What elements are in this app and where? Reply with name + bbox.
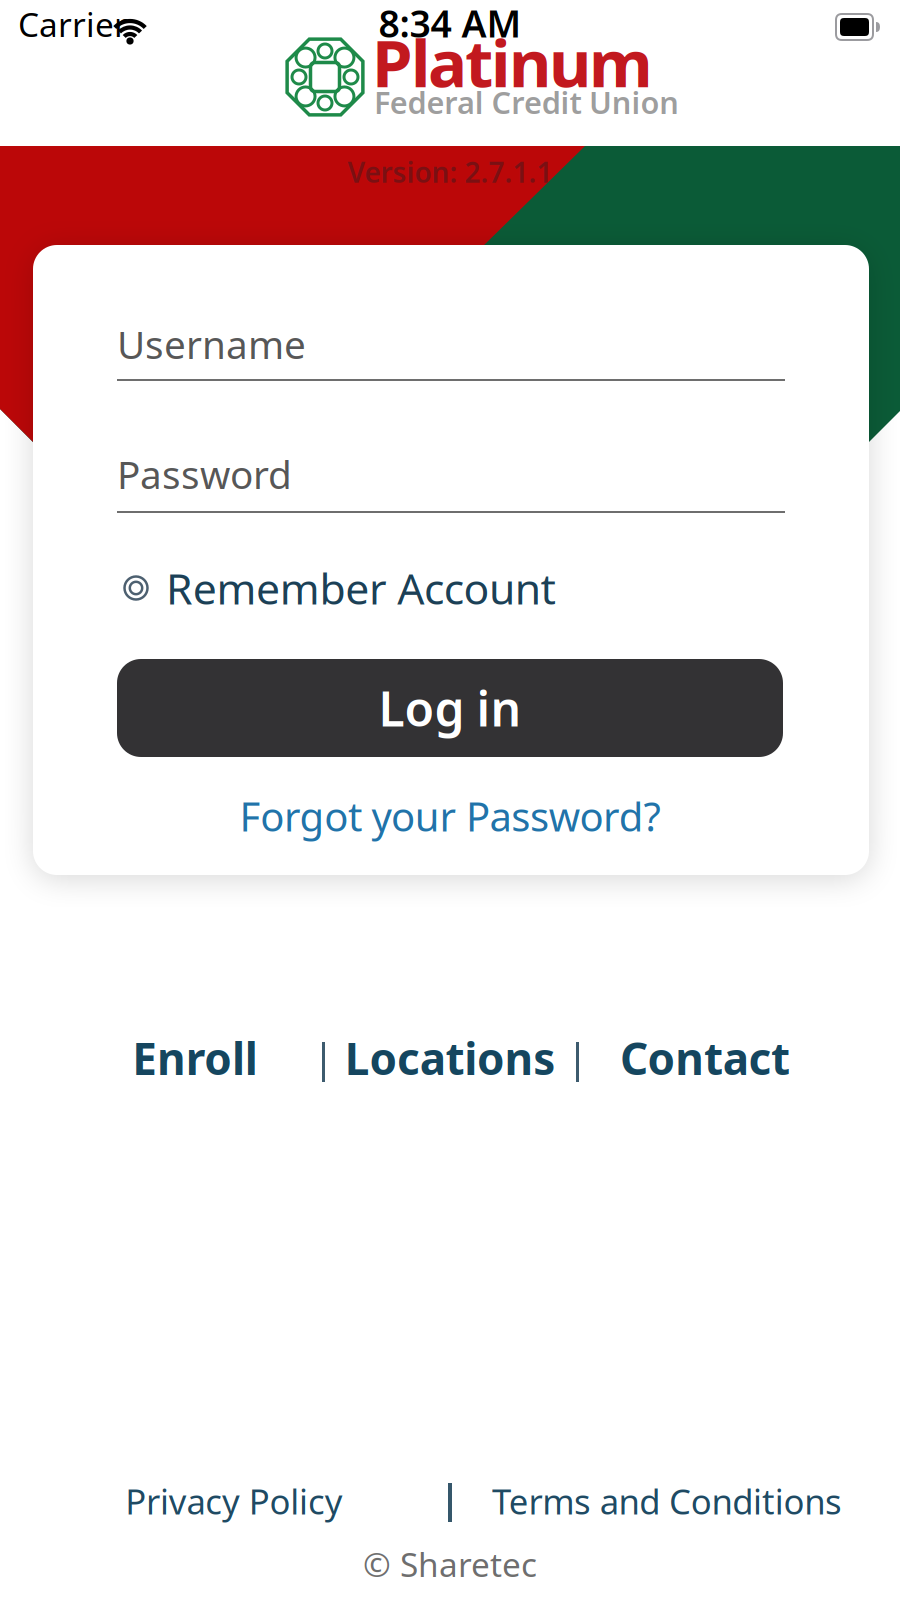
staticText: Locations <box>345 1029 555 1087</box>
staticText: Federal Credit Union <box>374 82 679 122</box>
button[interactable]: Enroll <box>132 1029 258 1087</box>
staticText: Log in <box>378 676 521 740</box>
staticText: Enroll <box>132 1029 258 1087</box>
button[interactable]: Terms and Conditions <box>492 1478 842 1524</box>
button[interactable]: Forgot your Password? <box>239 789 660 842</box>
staticText: Username <box>117 318 306 370</box>
staticText: Remember Account <box>166 560 555 616</box>
staticText: Privacy Policy <box>125 1478 343 1524</box>
staticText: Password <box>117 448 292 500</box>
button[interactable]: Remember Account <box>122 560 682 616</box>
staticText: 8:34 AM <box>378 0 521 48</box>
staticText: Forgot your Password? <box>239 789 660 842</box>
staticText: Terms and Conditions <box>492 1478 842 1524</box>
button[interactable]: Log in <box>117 659 783 757</box>
button[interactable]: Contact <box>620 1029 790 1087</box>
staticText: © Sharetec <box>363 1542 537 1586</box>
staticText: Carrier <box>18 2 128 46</box>
staticText: Version: 2.7.1.1 <box>347 153 552 191</box>
staticText: Platinum <box>372 19 653 105</box>
button[interactable]: Privacy Policy <box>125 1478 343 1524</box>
staticText: Contact <box>620 1029 790 1087</box>
button[interactable]: Locations <box>345 1029 555 1087</box>
